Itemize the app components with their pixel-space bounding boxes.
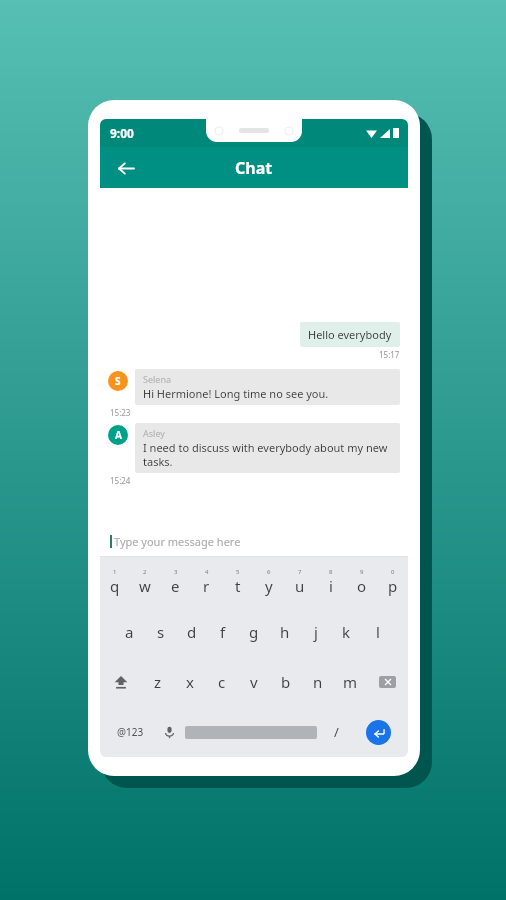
button[interactable]: v: [238, 657, 270, 707]
button[interactable]: j: [300, 607, 331, 657]
staticText: t: [235, 576, 241, 596]
button[interactable]: n: [302, 657, 334, 707]
button[interactable]: Asley: [135, 423, 400, 473]
button[interactable]: 7: [284, 557, 315, 607]
staticText: 9: [360, 568, 364, 576]
staticText: c: [218, 672, 226, 692]
button[interactable]: /: [317, 707, 355, 757]
staticText: @123: [117, 725, 144, 739]
staticText: p: [388, 576, 398, 596]
staticText: k: [342, 622, 351, 642]
staticText: 15:24: [110, 475, 131, 486]
staticText: u: [295, 576, 305, 596]
button[interactable]: a: [114, 607, 145, 657]
staticText: g: [249, 622, 259, 642]
staticText: y: [265, 576, 273, 596]
button[interactable]: Voice input: [154, 707, 185, 757]
staticText: A: [115, 428, 122, 442]
button[interactable]: Type your message here: [100, 526, 408, 557]
staticText: l: [376, 622, 380, 642]
staticText: 0: [391, 568, 395, 576]
button[interactable]: c: [206, 657, 238, 707]
staticText: 6: [267, 568, 271, 576]
staticText: 8: [329, 568, 333, 576]
staticText: i: [329, 576, 333, 596]
staticText: 4: [205, 568, 209, 576]
button[interactable]: Hello everybody: [300, 322, 400, 347]
staticText: q: [110, 576, 120, 596]
button[interactable]: 0: [377, 557, 408, 607]
staticText: a: [125, 622, 134, 642]
button[interactable]: k: [331, 607, 362, 657]
button[interactable]: 3: [160, 557, 191, 607]
staticText: Chat: [235, 157, 273, 179]
staticText: w: [139, 576, 151, 596]
staticText: n: [313, 672, 323, 692]
button[interactable]: g: [238, 607, 269, 657]
button[interactable]: A: [108, 425, 128, 445]
staticText: m: [343, 672, 358, 692]
staticText: 2: [143, 568, 147, 576]
button[interactable]: Backspace: [366, 657, 408, 707]
staticText: S: [115, 374, 121, 388]
staticText: o: [357, 576, 367, 596]
button[interactable]: Selena: [135, 369, 400, 405]
staticText: x: [186, 672, 194, 692]
button[interactable]: s: [145, 607, 176, 657]
button[interactable]: m: [334, 657, 366, 707]
staticText: e: [171, 576, 180, 596]
staticText: s: [157, 622, 165, 642]
button[interactable]: f: [207, 607, 238, 657]
button[interactable]: S: [108, 371, 128, 391]
staticText: 3: [174, 568, 178, 576]
staticText: d: [187, 622, 197, 642]
button[interactable]: Back: [108, 151, 142, 185]
button[interactable]: d: [176, 607, 207, 657]
staticText: 7: [298, 568, 302, 576]
staticText: Hi Hermione! Long time no see you.: [143, 386, 329, 401]
staticText: Hello everybody: [308, 327, 392, 342]
button[interactable]: 1: [100, 557, 130, 607]
button[interactable]: Send: [355, 707, 402, 757]
button[interactable]: h: [269, 607, 300, 657]
staticText: b: [281, 672, 291, 692]
staticText: z: [154, 672, 162, 692]
staticText: r: [203, 576, 210, 596]
staticText: v: [250, 672, 258, 692]
staticText: 15:17: [379, 349, 400, 360]
staticText: Type your message here: [114, 534, 241, 549]
button[interactable]: Shift: [100, 657, 142, 707]
staticText: I need to discuss with everybody about m…: [143, 440, 392, 469]
button[interactable]: 6: [253, 557, 284, 607]
button[interactable]: @123: [106, 707, 154, 757]
button[interactable]: z: [142, 657, 174, 707]
staticText: j: [314, 622, 318, 642]
button[interactable]: 4: [191, 557, 222, 607]
staticText: 5: [236, 568, 240, 576]
button[interactable]: x: [174, 657, 206, 707]
staticText: Selena: [143, 373, 172, 385]
staticText: f: [220, 622, 226, 642]
button[interactable]: 5: [222, 557, 253, 607]
button[interactable]: b: [270, 657, 302, 707]
button[interactable]: 2: [130, 557, 160, 607]
staticText: 1: [113, 568, 117, 576]
button[interactable]: 9: [346, 557, 377, 607]
staticText: /: [334, 723, 339, 741]
button[interactable]: 8: [315, 557, 346, 607]
staticText: 15:23: [110, 407, 131, 418]
button[interactable]: l: [362, 607, 393, 657]
staticText: Asley: [143, 427, 165, 439]
staticText: h: [280, 622, 290, 642]
staticText: 9:00: [110, 125, 134, 141]
